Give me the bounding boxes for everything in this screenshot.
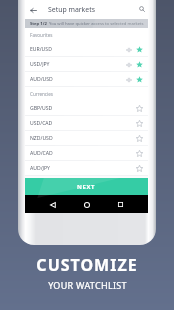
staticText: Currencies — [30, 91, 54, 97]
button[interactable]: AUD/USD — [25, 72, 148, 86]
staticText: USD/CAD — [30, 120, 53, 127]
button[interactable]: NEXT — [25, 178, 148, 195]
staticText: AUD/CAD — [30, 150, 53, 157]
button[interactable]: Back — [46, 198, 59, 211]
staticText: Step 1/2 — [30, 21, 47, 27]
staticText: CUSTOMIZE — [36, 254, 138, 276]
staticText: NZD/USD — [30, 135, 53, 142]
staticText: NEXT — [77, 183, 96, 191]
staticText: YOUR WATCHLIST — [48, 279, 127, 291]
button[interactable]: Recents — [114, 198, 127, 211]
button[interactable]: EUR/USD — [25, 42, 148, 56]
staticText: AUD/USD — [30, 76, 53, 83]
staticText: You will have quicker access to selected… — [49, 21, 144, 27]
button[interactable]: Back — [25, 2, 41, 18]
button[interactable]: NZD/USD — [25, 131, 148, 145]
button[interactable]: AUD/CAD — [25, 146, 148, 160]
staticText: GBP/USD — [30, 105, 53, 112]
staticText: Favourites — [30, 32, 53, 38]
button[interactable]: Home — [80, 198, 93, 211]
button[interactable]: GBP/USD — [25, 101, 148, 115]
button[interactable]: USD/JPY — [25, 57, 148, 71]
button[interactable]: USD/CAD — [25, 116, 148, 130]
staticText: EUR/USD — [30, 46, 52, 53]
button[interactable]: Search — [135, 2, 148, 15]
staticText: USD/JPY — [30, 61, 50, 68]
staticText: Setup markets — [48, 5, 95, 14]
staticText: AUD/JPY — [30, 165, 50, 172]
button[interactable]: AUD/JPY — [25, 161, 148, 175]
